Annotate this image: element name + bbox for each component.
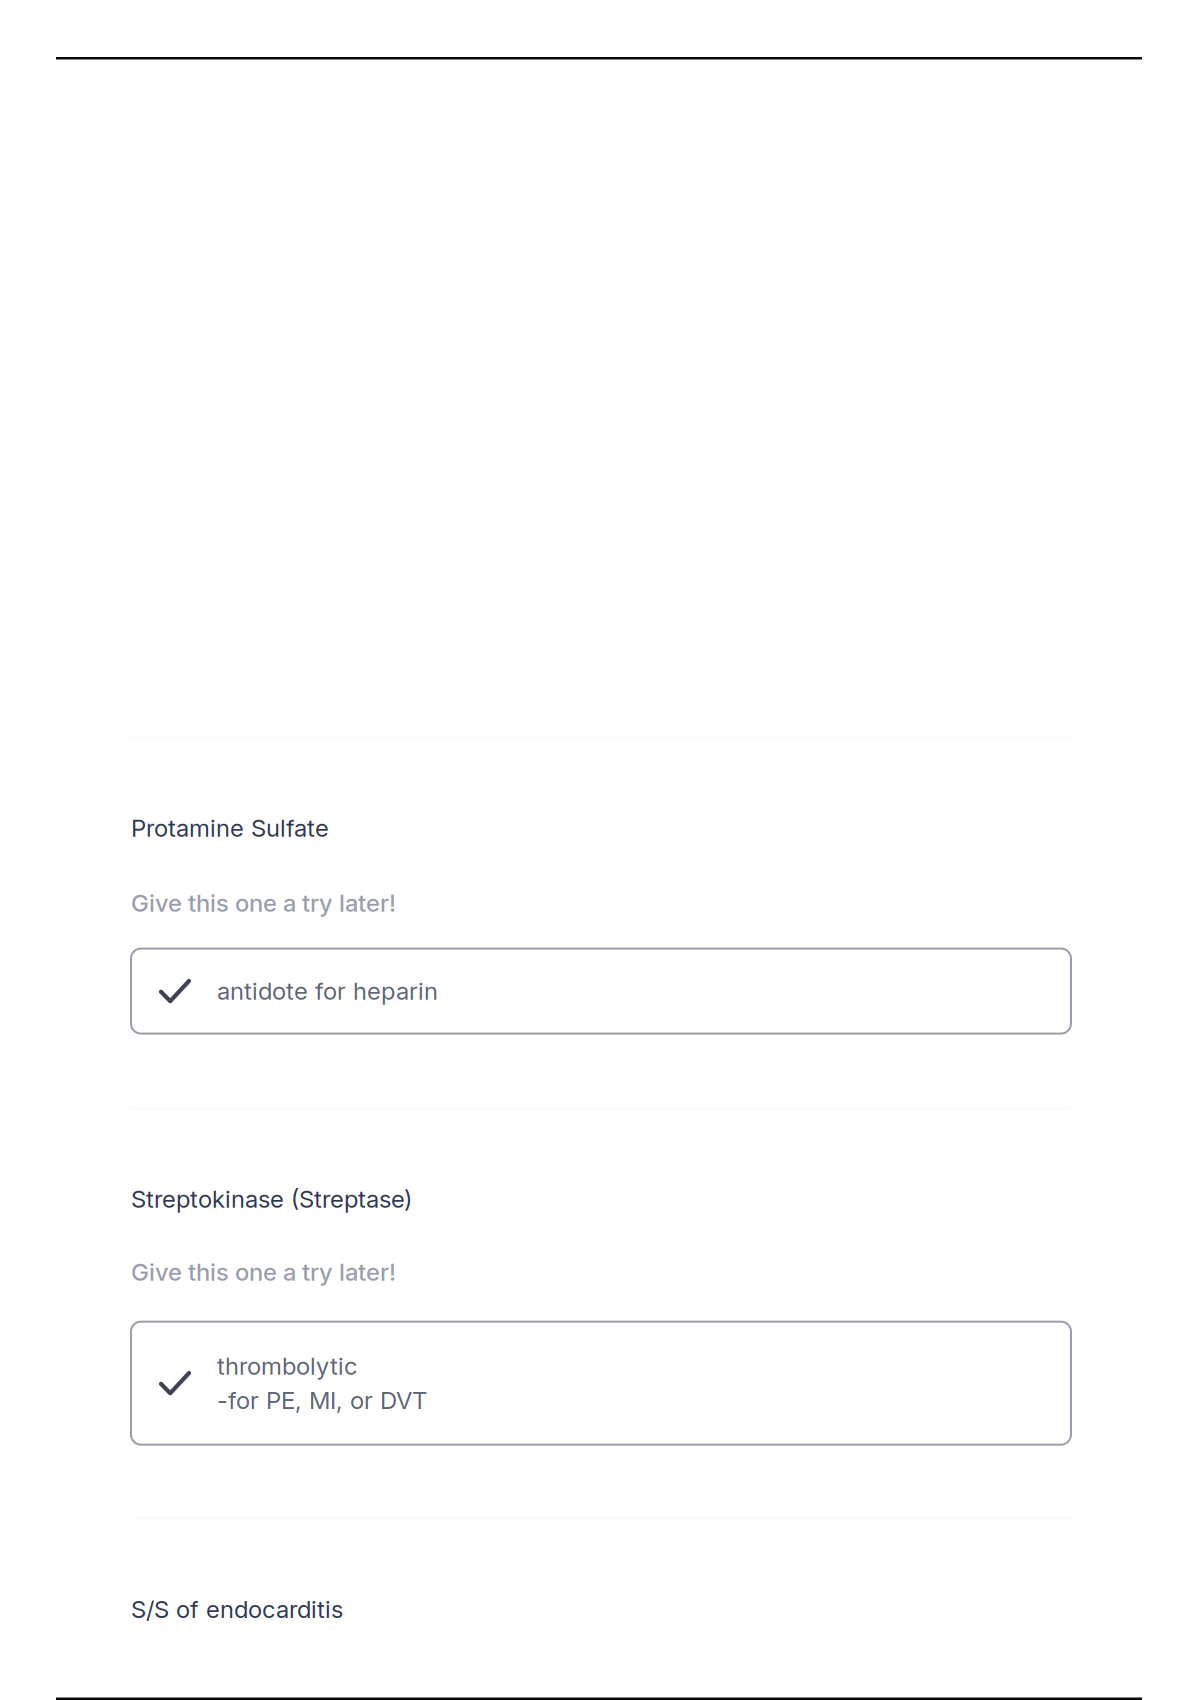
button[interactable]: antidote for heparin [131, 949, 1071, 1034]
staticText: Give this one a try later! [131, 888, 396, 917]
staticText: S/S of endocarditis [131, 1595, 343, 1624]
staticText: Protamine Sulfate [131, 813, 329, 842]
staticText: Streptokinase (Streptase) [131, 1185, 412, 1214]
button[interactable]: thrombolytic [131, 1322, 1071, 1445]
staticText: antidote for heparin [217, 977, 438, 1006]
staticText: -for PE, MI, or DVT [217, 1386, 427, 1415]
staticText: thrombolytic [217, 1352, 357, 1381]
staticText: Give this one a try later! [131, 1258, 396, 1287]
